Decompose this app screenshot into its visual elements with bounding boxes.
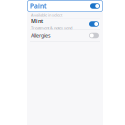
staticText: Allergies — [31, 32, 51, 39]
button[interactable]: Toggle on — [90, 3, 100, 9]
staticText: Mint — [31, 17, 43, 24]
button[interactable]: Mint — [27, 18, 103, 29]
button[interactable]: Toggle on — [89, 21, 99, 27]
staticText: Paint — [30, 2, 47, 10]
button[interactable]: Toggle off — [89, 33, 99, 38]
staticText: Available in select — [31, 12, 62, 18]
button[interactable]: Paint — [27, 0, 103, 12]
button[interactable]: Allergies — [27, 30, 103, 41]
staticText: Treatment & notes send — [31, 25, 72, 31]
